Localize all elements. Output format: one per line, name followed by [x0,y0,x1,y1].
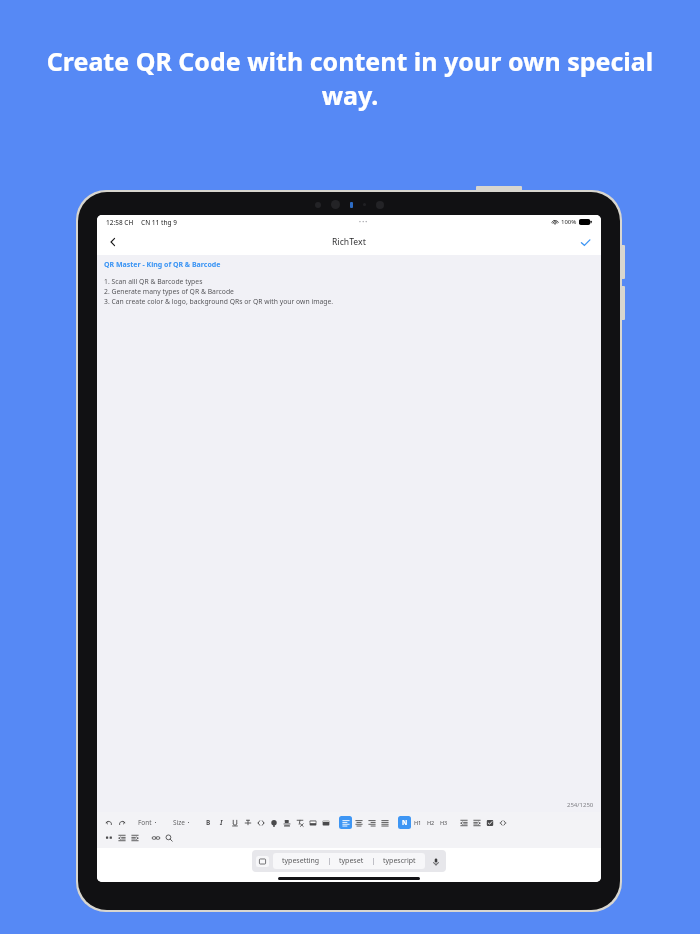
staticText: I [220,818,223,827]
button[interactable]: Size [171,816,192,829]
staticText: Create QR Code with content in your own … [40,44,660,112]
button[interactable]: Insert video [319,816,332,829]
button[interactable]: Justify [378,816,391,829]
button[interactable]: Redo [115,816,128,829]
staticText: H1 [414,819,422,826]
staticText: Font [138,818,152,827]
staticText: B [206,818,211,827]
button[interactable]: H1 [411,816,424,829]
staticText: 3. Can create color & logo, background Q… [104,297,334,306]
staticText: 1. Scan alll QR & Barcode types [104,277,203,286]
button[interactable]: H2 [424,816,437,829]
button[interactable]: Strikethrough [241,816,254,829]
button[interactable]: typescript [374,853,425,869]
staticText: CN 11 thg 9 [141,218,177,227]
button[interactable]: Code [254,816,267,829]
staticText: typeset [339,856,364,866]
staticText: 2. Generate many types of QR & Barcode [104,287,234,296]
staticText: 254/1250 [567,801,594,809]
button[interactable]: Outdent [115,831,128,844]
button[interactable]: Indent [128,831,141,844]
button[interactable]: HTML [496,816,509,829]
button[interactable]: Align right [365,816,378,829]
button[interactable]: Find [162,831,175,844]
staticText: QR Master - King of QR & Barcode [104,260,221,270]
button[interactable]: Quote [102,831,115,844]
staticText: 12:58 CH [106,218,134,227]
button[interactable]: Insert link [149,831,162,844]
staticText: typesetting [282,856,320,866]
staticText: N [402,818,408,827]
button[interactable]: Keyboard layout [256,856,269,867]
button[interactable]: Font [136,816,159,829]
button[interactable]: Done [575,232,595,252]
staticText: 100% [561,218,577,226]
button[interactable]: Align center [352,816,365,829]
button[interactable]: Checklist [483,816,496,829]
staticText: Size [173,818,185,827]
staticText: RichText [332,236,366,248]
staticText: • • • [359,219,368,226]
button[interactable]: Clear format [293,816,306,829]
button[interactable]: Underline [228,816,241,829]
staticText: typescript [383,856,416,866]
button[interactable]: Text color [267,816,280,829]
button[interactable]: Decrease indent [457,816,470,829]
button[interactable]: Back [103,232,123,252]
button[interactable]: Dictation [429,856,442,867]
button[interactable]: Highlight [280,816,293,829]
staticText: H2 [427,819,435,826]
staticText: H3 [440,819,448,826]
button[interactable]: N [398,816,411,829]
button[interactable]: I [215,816,228,829]
button[interactable]: Insert image [306,816,319,829]
button[interactable]: typesetting [273,853,329,869]
button[interactable]: Increase indent [470,816,483,829]
button[interactable]: Align left [339,816,352,829]
button[interactable]: Undo [102,816,115,829]
button[interactable]: B [202,816,215,829]
button[interactable]: H3 [437,816,450,829]
button[interactable]: typeset [330,853,373,869]
